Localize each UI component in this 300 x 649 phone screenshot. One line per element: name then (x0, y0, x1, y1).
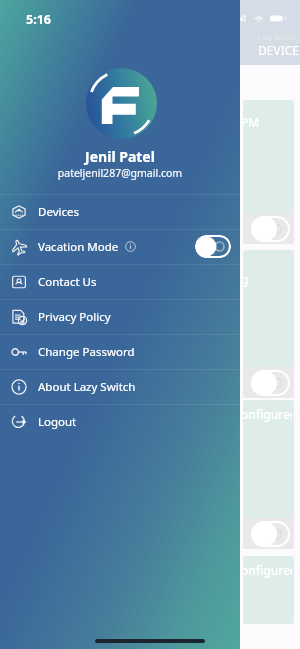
staticText: Change Password (38, 344, 135, 360)
button[interactable]: Logout (0, 404, 240, 439)
staticText: Contact Us (38, 274, 97, 290)
button[interactable]: Contact Us (0, 264, 240, 299)
button[interactable]: Privacy Policy (0, 299, 240, 334)
staticText: Devices (38, 204, 79, 220)
button[interactable]: onfigured (243, 400, 294, 549)
staticText: g (243, 271, 249, 287)
button[interactable]: Change Password (0, 334, 240, 369)
button[interactable]: Devices (0, 194, 240, 229)
button[interactable]: onfigured (243, 556, 294, 624)
staticText: Logout (38, 414, 77, 430)
button[interactable]: Device switch (252, 217, 289, 241)
staticText: Vacation Mode (38, 239, 119, 255)
staticText: PM (243, 114, 260, 130)
staticText: onfigured (243, 562, 292, 578)
staticText: 5:16 (26, 11, 51, 28)
staticText: DEVICE (258, 42, 299, 58)
staticText: pateljenil287@gmail.com (0, 166, 240, 180)
button[interactable]: Device switch (252, 371, 289, 395)
button[interactable]: g (243, 250, 294, 398)
button[interactable]: About Lazy Switch (0, 369, 240, 404)
button[interactable]: Vacation Mode (0, 229, 240, 264)
staticText: About Lazy Switch (38, 379, 136, 395)
staticText: Privacy Policy (38, 309, 111, 325)
staticText: Lazy Switch (258, 33, 296, 43)
staticText: onfigured (243, 406, 292, 422)
button[interactable]: PM (243, 100, 294, 244)
button[interactable]: Device switch (252, 522, 289, 546)
staticText: Jenil Patel (0, 147, 240, 166)
button[interactable]: Vacation mode toggle (195, 235, 231, 258)
